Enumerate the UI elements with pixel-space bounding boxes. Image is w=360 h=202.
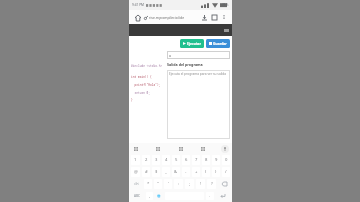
button[interactable]: ' xyxy=(164,179,172,189)
button[interactable]: a xyxy=(167,51,230,59)
staticText: } xyxy=(131,98,133,102)
staticText: 8 xyxy=(205,157,208,163)
button[interactable]: - xyxy=(182,167,190,177)
staticText: 3 xyxy=(155,157,158,163)
button[interactable]: =\< xyxy=(131,179,142,189)
button[interactable]: $ xyxy=(152,167,160,177)
staticText: * xyxy=(147,181,150,187)
staticText: =\< xyxy=(134,182,139,186)
staticText: printf("Hola"); xyxy=(131,83,161,87)
button[interactable]: , xyxy=(146,192,153,200)
button[interactable]: 5 xyxy=(172,155,180,165)
staticText: Guardar xyxy=(213,41,227,46)
button[interactable]: : xyxy=(174,179,183,189)
staticText: #include <stdio.h> xyxy=(131,64,163,68)
button[interactable]: Voice input xyxy=(221,145,229,153)
button[interactable]: Sticker xyxy=(177,145,185,153)
button[interactable]: ? xyxy=(207,179,216,189)
staticText: $ xyxy=(155,169,158,175)
button[interactable]: * xyxy=(144,179,152,189)
button[interactable]: Backspace xyxy=(218,179,230,189)
staticText: 0 xyxy=(225,157,228,163)
button[interactable]: 1 xyxy=(131,155,140,165)
button[interactable]: 4 xyxy=(162,155,170,165)
staticText: return 0; xyxy=(131,91,151,95)
button[interactable]: Ejecutar xyxy=(180,39,204,48)
staticText: ; xyxy=(189,181,191,187)
staticText: . xyxy=(209,193,211,199)
staticText: # xyxy=(145,169,148,175)
button[interactable]: 9 xyxy=(212,155,220,165)
button[interactable]: Enter xyxy=(216,192,230,200)
staticText: Salida del programa xyxy=(167,62,203,67)
staticText: 🌐 xyxy=(157,194,161,198)
button[interactable]: " xyxy=(154,179,162,189)
staticText: ( xyxy=(205,169,207,175)
staticText: ! xyxy=(200,181,202,187)
button[interactable]: 6 xyxy=(182,155,190,165)
staticText: , xyxy=(149,193,151,199)
button[interactable]: Apps xyxy=(132,145,140,153)
button[interactable]: More options xyxy=(220,13,228,21)
staticText: 5 xyxy=(175,157,178,163)
button[interactable]: @ xyxy=(131,167,140,177)
staticText: 9 xyxy=(215,157,218,163)
button[interactable]: Guardar xyxy=(206,39,230,48)
button[interactable]: 7 xyxy=(192,155,200,165)
button[interactable]: 2 xyxy=(142,155,150,165)
staticText: 4 xyxy=(165,157,168,163)
button[interactable]: + xyxy=(192,167,200,177)
button[interactable]: Tabs xyxy=(210,13,218,21)
button[interactable]: ( xyxy=(202,167,210,177)
button[interactable]: ABC xyxy=(131,192,144,200)
button[interactable]: ) xyxy=(212,167,220,177)
staticText: 71% xyxy=(222,3,229,7)
staticText: @ xyxy=(134,169,138,175)
staticText: " xyxy=(157,181,159,187)
button[interactable]: rise.mycompiler.io/ide xyxy=(144,15,200,20)
staticText: 6 xyxy=(185,157,188,163)
button[interactable]: Settings xyxy=(199,145,207,153)
staticText: a xyxy=(169,53,171,58)
staticText: ABC xyxy=(134,194,141,198)
button[interactable]: 8 xyxy=(202,155,210,165)
staticText: rise.mycompiler.io/ide xyxy=(149,15,185,20)
staticText: ? xyxy=(211,181,213,187)
button[interactable]: ! xyxy=(196,179,205,189)
button[interactable]: 3 xyxy=(152,155,160,165)
staticText: & xyxy=(174,169,178,175)
staticText: 9:41 PM xyxy=(132,3,144,7)
button[interactable]: Download xyxy=(200,13,208,21)
button[interactable]: ; xyxy=(185,179,194,189)
staticText: : xyxy=(178,181,180,187)
button[interactable]: # xyxy=(142,167,150,177)
staticText: ' xyxy=(168,181,169,187)
staticText: int main() { xyxy=(131,75,152,79)
button[interactable]: / xyxy=(222,167,230,177)
button[interactable]: Home xyxy=(133,13,142,22)
button[interactable]: . xyxy=(206,192,214,200)
staticText: _ xyxy=(165,169,167,175)
staticText: 1 xyxy=(134,157,137,163)
staticText: 2 xyxy=(145,157,148,163)
button[interactable]: 0 xyxy=(222,155,230,165)
staticText: ) xyxy=(215,169,217,175)
staticText: Ejecutar xyxy=(187,41,201,46)
staticText: Ejecuta el programa para ver su salida xyxy=(169,72,227,76)
staticText: + xyxy=(195,169,198,175)
button[interactable]: GIF xyxy=(154,145,162,153)
button[interactable]: & xyxy=(172,167,180,177)
staticText: / xyxy=(225,169,227,175)
staticText: - xyxy=(185,169,187,175)
button[interactable]: Language xyxy=(155,192,163,200)
button[interactable]: _ xyxy=(162,167,170,177)
staticText: 7 xyxy=(195,157,198,163)
